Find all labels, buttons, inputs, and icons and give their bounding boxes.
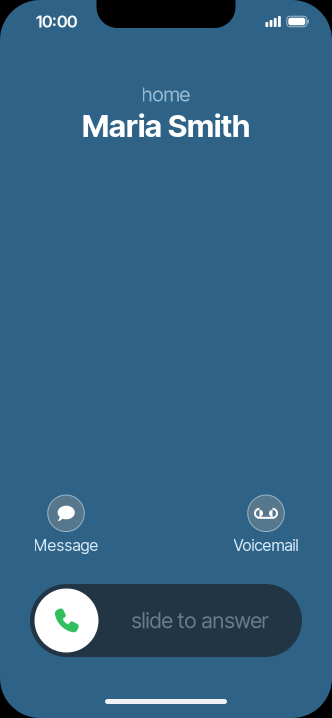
button[interactable]: Voicemail (211, 496, 321, 554)
button[interactable]: Message (11, 496, 121, 554)
staticText: home (141, 82, 190, 106)
button[interactable]: Slide to answer (30, 584, 302, 657)
staticText: Voicemail (233, 536, 298, 555)
staticText: 10:00 (36, 11, 77, 32)
staticText: Message (33, 536, 98, 555)
staticText: slide to answer (131, 608, 268, 633)
staticText: Maria Smith (82, 107, 250, 144)
